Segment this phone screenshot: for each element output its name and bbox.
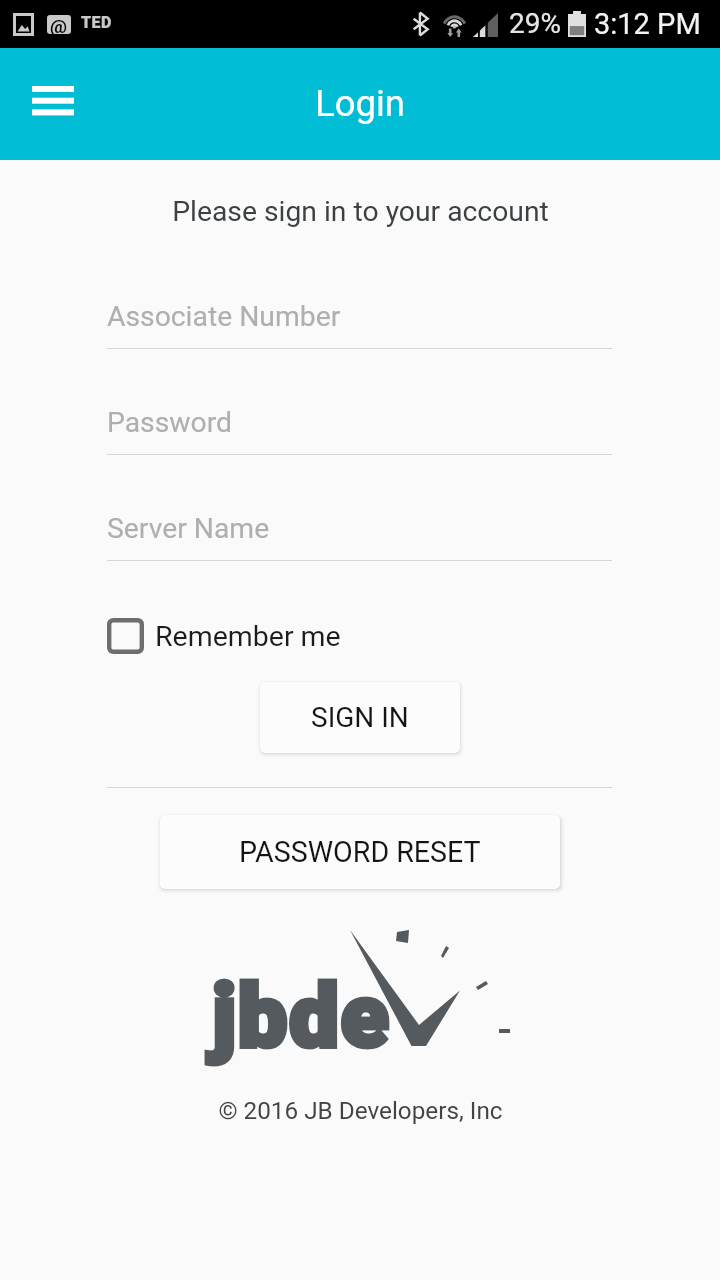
button[interactable]: SIGN IN: [260, 682, 460, 753]
staticText: TED: [81, 13, 112, 32]
staticText: 29%: [509, 7, 561, 40]
staticText: Please sign in to your account: [172, 195, 549, 228]
staticText: @: [50, 15, 68, 34]
staticText: jbde: [212, 964, 391, 1067]
staticText: PASSWORD RESET: [239, 835, 481, 869]
button[interactable]: Associate Number: [107, 300, 612, 349]
button[interactable]: Remember me: [107, 616, 341, 656]
staticText: jbde: [212, 964, 391, 1067]
button[interactable]: PASSWORD RESET: [160, 815, 560, 889]
staticText: 3:12 PM: [594, 7, 701, 41]
button[interactable]: Server Name: [107, 512, 612, 561]
button[interactable]: Password: [107, 406, 612, 455]
button[interactable]: Open navigation menu: [5, 53, 101, 149]
staticText: © 2016 JB Developers, Inc: [218, 1096, 503, 1124]
staticText: Associate Number: [107, 300, 341, 333]
staticText: Login: [0, 82, 720, 125]
staticText: Password: [107, 406, 232, 439]
staticText: Remember me: [155, 620, 341, 653]
staticText: Server Name: [107, 512, 270, 545]
staticText: SIGN IN: [311, 701, 409, 734]
